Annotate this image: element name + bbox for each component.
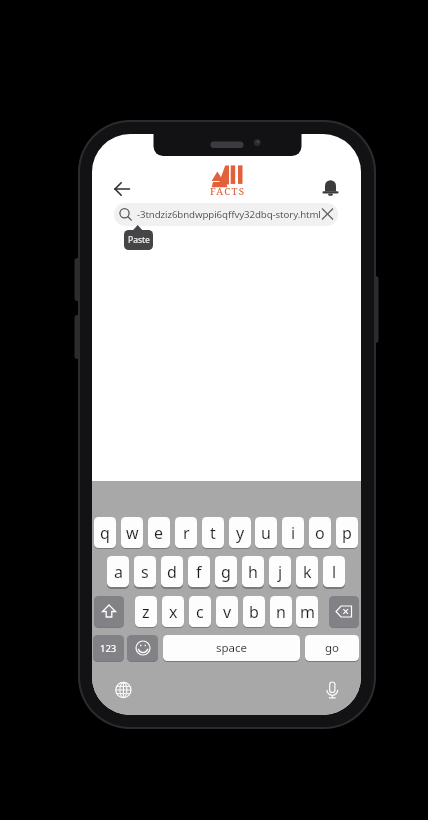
staticText: u	[261, 522, 271, 544]
staticText: c	[196, 601, 204, 623]
button[interactable]: Paste	[124, 230, 153, 250]
button[interactable]: t	[202, 517, 224, 548]
staticText: FACTS	[210, 185, 246, 198]
button[interactable]: space	[163, 635, 300, 661]
button[interactable]: j	[269, 556, 291, 587]
staticText: g	[221, 561, 231, 583]
button[interactable]: 123	[93, 635, 124, 661]
staticText: Paste	[128, 234, 150, 246]
staticText: s	[141, 561, 149, 583]
staticText: t	[210, 522, 216, 544]
button[interactable]: c	[189, 596, 211, 627]
staticText: r	[183, 522, 190, 544]
button[interactable]: e	[148, 517, 170, 548]
staticText: m	[300, 601, 315, 623]
button[interactable]: g	[215, 556, 237, 587]
staticText: i	[291, 522, 296, 544]
button[interactable]: v	[216, 596, 238, 627]
button[interactable]: q	[94, 517, 116, 548]
staticText: p	[342, 522, 352, 544]
button[interactable]	[127, 635, 158, 661]
button[interactable]: l	[323, 556, 345, 587]
button[interactable]	[94, 596, 124, 627]
staticText: f	[196, 561, 202, 583]
button[interactable]: n	[270, 596, 292, 627]
staticText: x	[169, 601, 178, 623]
staticText: b	[249, 601, 259, 623]
button[interactable]: p	[336, 517, 358, 548]
staticText: q	[100, 522, 110, 544]
button[interactable]: m	[296, 596, 318, 627]
staticText: y	[236, 522, 245, 544]
button[interactable]: d	[161, 556, 183, 587]
button[interactable]: u	[255, 517, 277, 548]
button[interactable]	[329, 596, 359, 627]
button[interactable]: s	[134, 556, 156, 587]
staticText: o	[315, 522, 325, 544]
button[interactable]: k	[296, 556, 318, 587]
staticText: w	[126, 522, 139, 544]
staticText: -3tndziz6bndwppi6qffvy32dbq-story.html	[137, 208, 321, 221]
staticText: a	[114, 561, 123, 583]
staticText: k	[303, 561, 312, 583]
staticText: j	[278, 561, 283, 583]
staticText: space	[216, 640, 248, 656]
staticText: z	[142, 601, 150, 623]
button[interactable]: go	[305, 635, 359, 661]
staticText: d	[167, 561, 177, 583]
button[interactable]: a	[107, 556, 129, 587]
staticText: l	[332, 561, 337, 583]
staticText: e	[154, 522, 164, 544]
staticText: 123	[100, 642, 117, 655]
button[interactable]: r	[175, 517, 197, 548]
button[interactable]: f	[188, 556, 210, 587]
staticText: h	[248, 561, 258, 583]
staticText: n	[276, 601, 286, 623]
staticText: go	[325, 640, 340, 656]
button[interactable]: w	[121, 517, 143, 548]
button[interactable]: z	[135, 596, 157, 627]
button[interactable]: i	[282, 517, 304, 548]
button[interactable]	[114, 203, 338, 226]
button[interactable]: b	[243, 596, 265, 627]
button[interactable]: o	[309, 517, 331, 548]
button[interactable]: y	[229, 517, 251, 548]
staticText: v	[223, 601, 232, 623]
button[interactable]	[108, 175, 136, 203]
button[interactable]	[317, 175, 344, 202]
button[interactable]: x	[162, 596, 184, 627]
button[interactable]: h	[242, 556, 264, 587]
